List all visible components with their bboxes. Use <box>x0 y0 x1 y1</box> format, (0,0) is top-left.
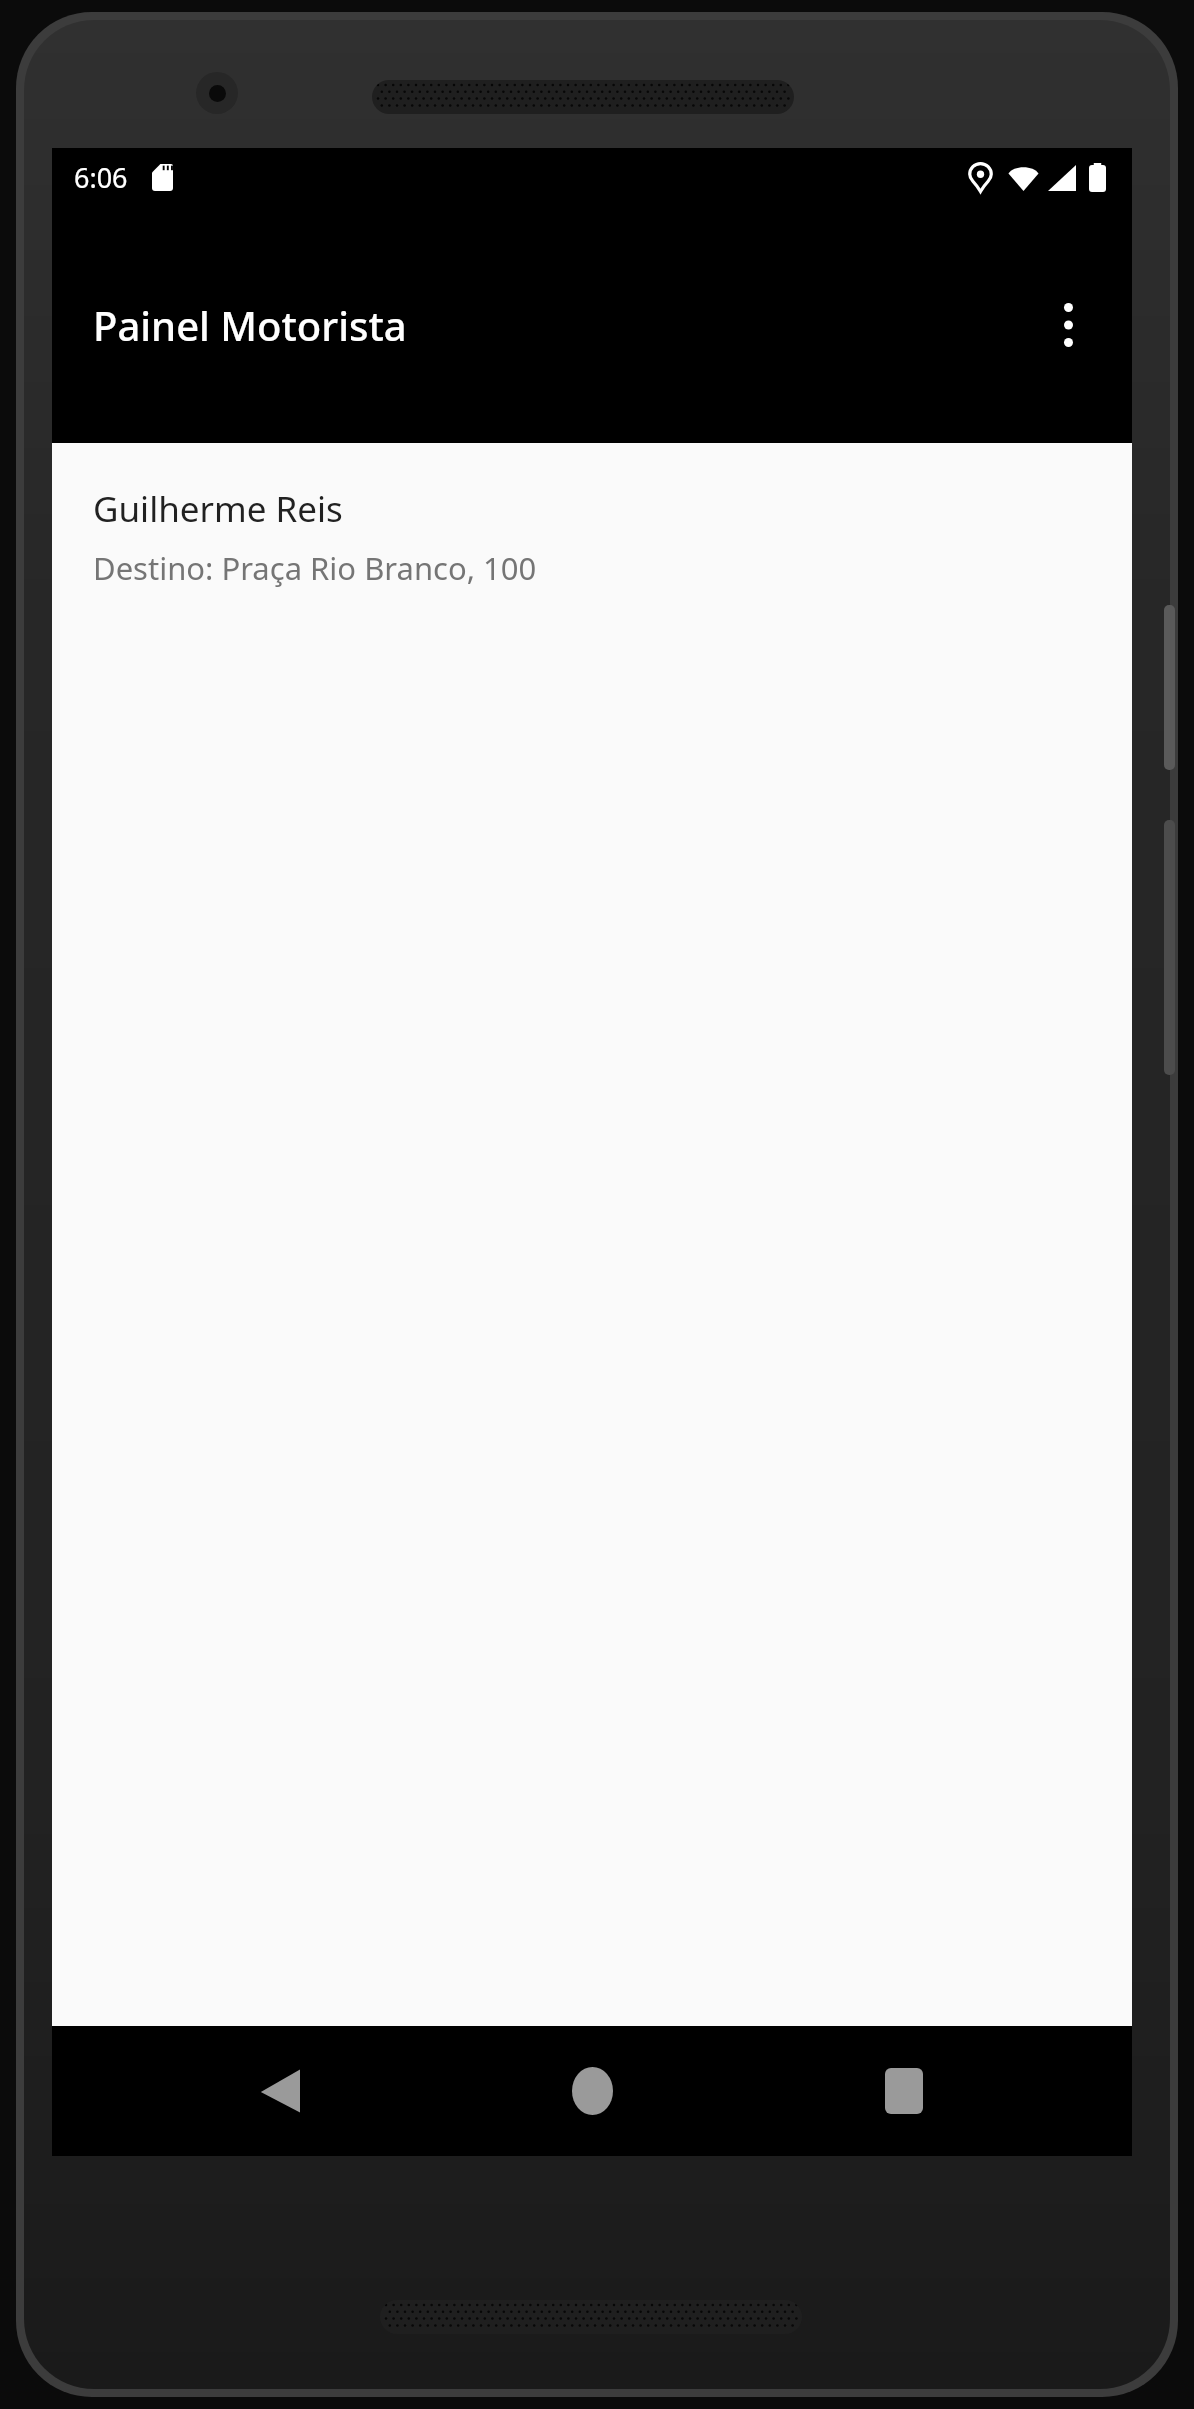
staticText: Painel Motorista <box>93 298 407 352</box>
staticText: 6:06 <box>74 159 128 196</box>
button[interactable]: Recent apps <box>848 2035 960 2147</box>
button[interactable]: Guilherme Reis <box>52 443 1132 615</box>
button[interactable]: Home <box>536 2035 648 2147</box>
staticText: Guilherme Reis <box>93 485 343 533</box>
button[interactable]: More options <box>1024 281 1112 369</box>
button[interactable]: Back <box>224 2035 336 2147</box>
staticText: Destino: Praça Rio Branco, 100 <box>93 547 537 589</box>
